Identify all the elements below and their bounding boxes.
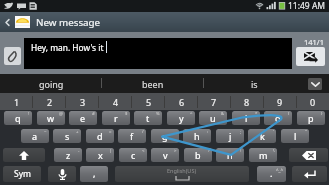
staticText: _ — [175, 129, 177, 135]
button[interactable]: s — [53, 129, 81, 143]
staticText: ~ — [44, 129, 47, 135]
staticText: @ — [59, 111, 63, 117]
staticText: | — [109, 148, 112, 154]
staticText: ) — [321, 111, 323, 117]
staticText: x — [98, 149, 103, 161]
button[interactable]: 0 — [296, 93, 329, 110]
staticText: u — [210, 112, 216, 124]
staticText: ; — [240, 129, 242, 135]
button[interactable]: l — [281, 129, 309, 143]
button[interactable]: y — [167, 111, 195, 125]
button[interactable]: v — [151, 148, 179, 162]
button[interactable]: Backspace — [289, 148, 328, 162]
button[interactable]: 8 — [230, 93, 263, 110]
staticText: m — [259, 149, 268, 161]
button[interactable]: Voice input — [48, 166, 76, 182]
staticText: ! — [240, 148, 242, 154]
staticText: Hey, man. How's it — [31, 42, 104, 53]
staticText: New message — [36, 16, 101, 29]
button[interactable]: Space — [115, 166, 249, 182]
staticText: l — [294, 130, 297, 142]
button[interactable]: f — [118, 129, 146, 143]
staticText: a — [32, 130, 38, 142]
button[interactable]: r — [102, 111, 130, 125]
button[interactable]: 6 — [165, 93, 198, 110]
button[interactable]: k — [248, 129, 276, 143]
staticText: k — [260, 130, 265, 142]
staticText: is — [251, 78, 258, 90]
button[interactable]: 5 — [132, 93, 165, 110]
staticText: 0 — [310, 96, 316, 108]
staticText: ( — [288, 111, 290, 117]
staticText: \ — [273, 148, 275, 154]
staticText: / — [142, 129, 144, 135]
button[interactable]: Back — [0, 12, 15, 32]
staticText: 2 — [47, 96, 53, 108]
staticText: * — [255, 111, 258, 117]
staticText: % — [156, 111, 160, 117]
staticText: ' — [273, 129, 274, 135]
button[interactable]: w — [37, 111, 65, 125]
button[interactable]: p — [297, 111, 325, 125]
button[interactable]: a — [21, 129, 49, 143]
button[interactable]: , — [80, 166, 108, 182]
button[interactable]: Expand suggestions — [308, 78, 322, 90]
button[interactable]: 7 — [197, 93, 230, 110]
button[interactable]: 1 — [0, 93, 33, 110]
button[interactable]: Enter — [292, 166, 327, 182]
staticText: " — [305, 129, 307, 135]
button[interactable]: o — [264, 111, 292, 125]
staticText: j — [229, 130, 232, 142]
button[interactable]: 2 — [33, 93, 66, 110]
button[interactable]: d — [86, 129, 114, 143]
button[interactable]: q — [4, 111, 32, 125]
staticText: & — [221, 111, 225, 117]
button[interactable]: e — [69, 111, 97, 125]
button[interactable]: m — [249, 148, 277, 162]
button[interactable]: going — [0, 74, 102, 93]
staticText: v — [163, 149, 168, 161]
staticText: i — [245, 112, 248, 124]
staticText: e — [80, 112, 86, 124]
button[interactable]: 9 — [263, 93, 296, 110]
button[interactable]: Hey, man. How's it — [24, 38, 292, 69]
staticText: English(US) — [167, 167, 197, 174]
staticText: c — [131, 149, 136, 161]
staticText: g — [162, 130, 168, 142]
button[interactable]: c — [119, 148, 147, 162]
staticText: , — [93, 167, 96, 179]
button[interactable]: Shift — [3, 148, 45, 162]
staticText: 6 — [179, 96, 185, 108]
staticText: 9 — [277, 96, 283, 108]
button[interactable]: j — [216, 129, 244, 143]
button[interactable]: t — [134, 111, 162, 125]
button[interactable]: b — [184, 148, 212, 162]
button[interactable]: . — [257, 166, 286, 182]
button[interactable]: been — [102, 74, 204, 93]
button[interactable]: 4 — [99, 93, 132, 110]
staticText: s — [65, 130, 70, 142]
staticText: d — [97, 130, 103, 142]
button[interactable]: h — [183, 129, 211, 143]
button[interactable]: Attach — [4, 47, 21, 65]
staticText: > — [174, 148, 177, 154]
staticText: going — [39, 78, 64, 90]
button[interactable]: n — [216, 148, 244, 162]
staticText: 141/1 — [304, 37, 324, 47]
button[interactable]: is — [203, 74, 305, 93]
staticText: h — [194, 130, 200, 142]
button[interactable]: u — [199, 111, 227, 125]
button[interactable]: z — [54, 148, 82, 162]
button[interactable]: Send — [296, 47, 325, 66]
staticText: w — [47, 112, 55, 124]
staticText: . — [270, 167, 273, 179]
staticText: ^ — [190, 111, 193, 117]
button[interactable]: 3 — [66, 93, 99, 110]
button[interactable]: x — [86, 148, 114, 162]
staticText: 3 — [80, 96, 86, 108]
staticText: 5 — [146, 96, 152, 108]
button[interactable]: Sym — [3, 166, 41, 182]
button[interactable]: i — [232, 111, 260, 125]
button[interactable]: g — [151, 129, 179, 143]
staticText: = — [109, 129, 112, 135]
